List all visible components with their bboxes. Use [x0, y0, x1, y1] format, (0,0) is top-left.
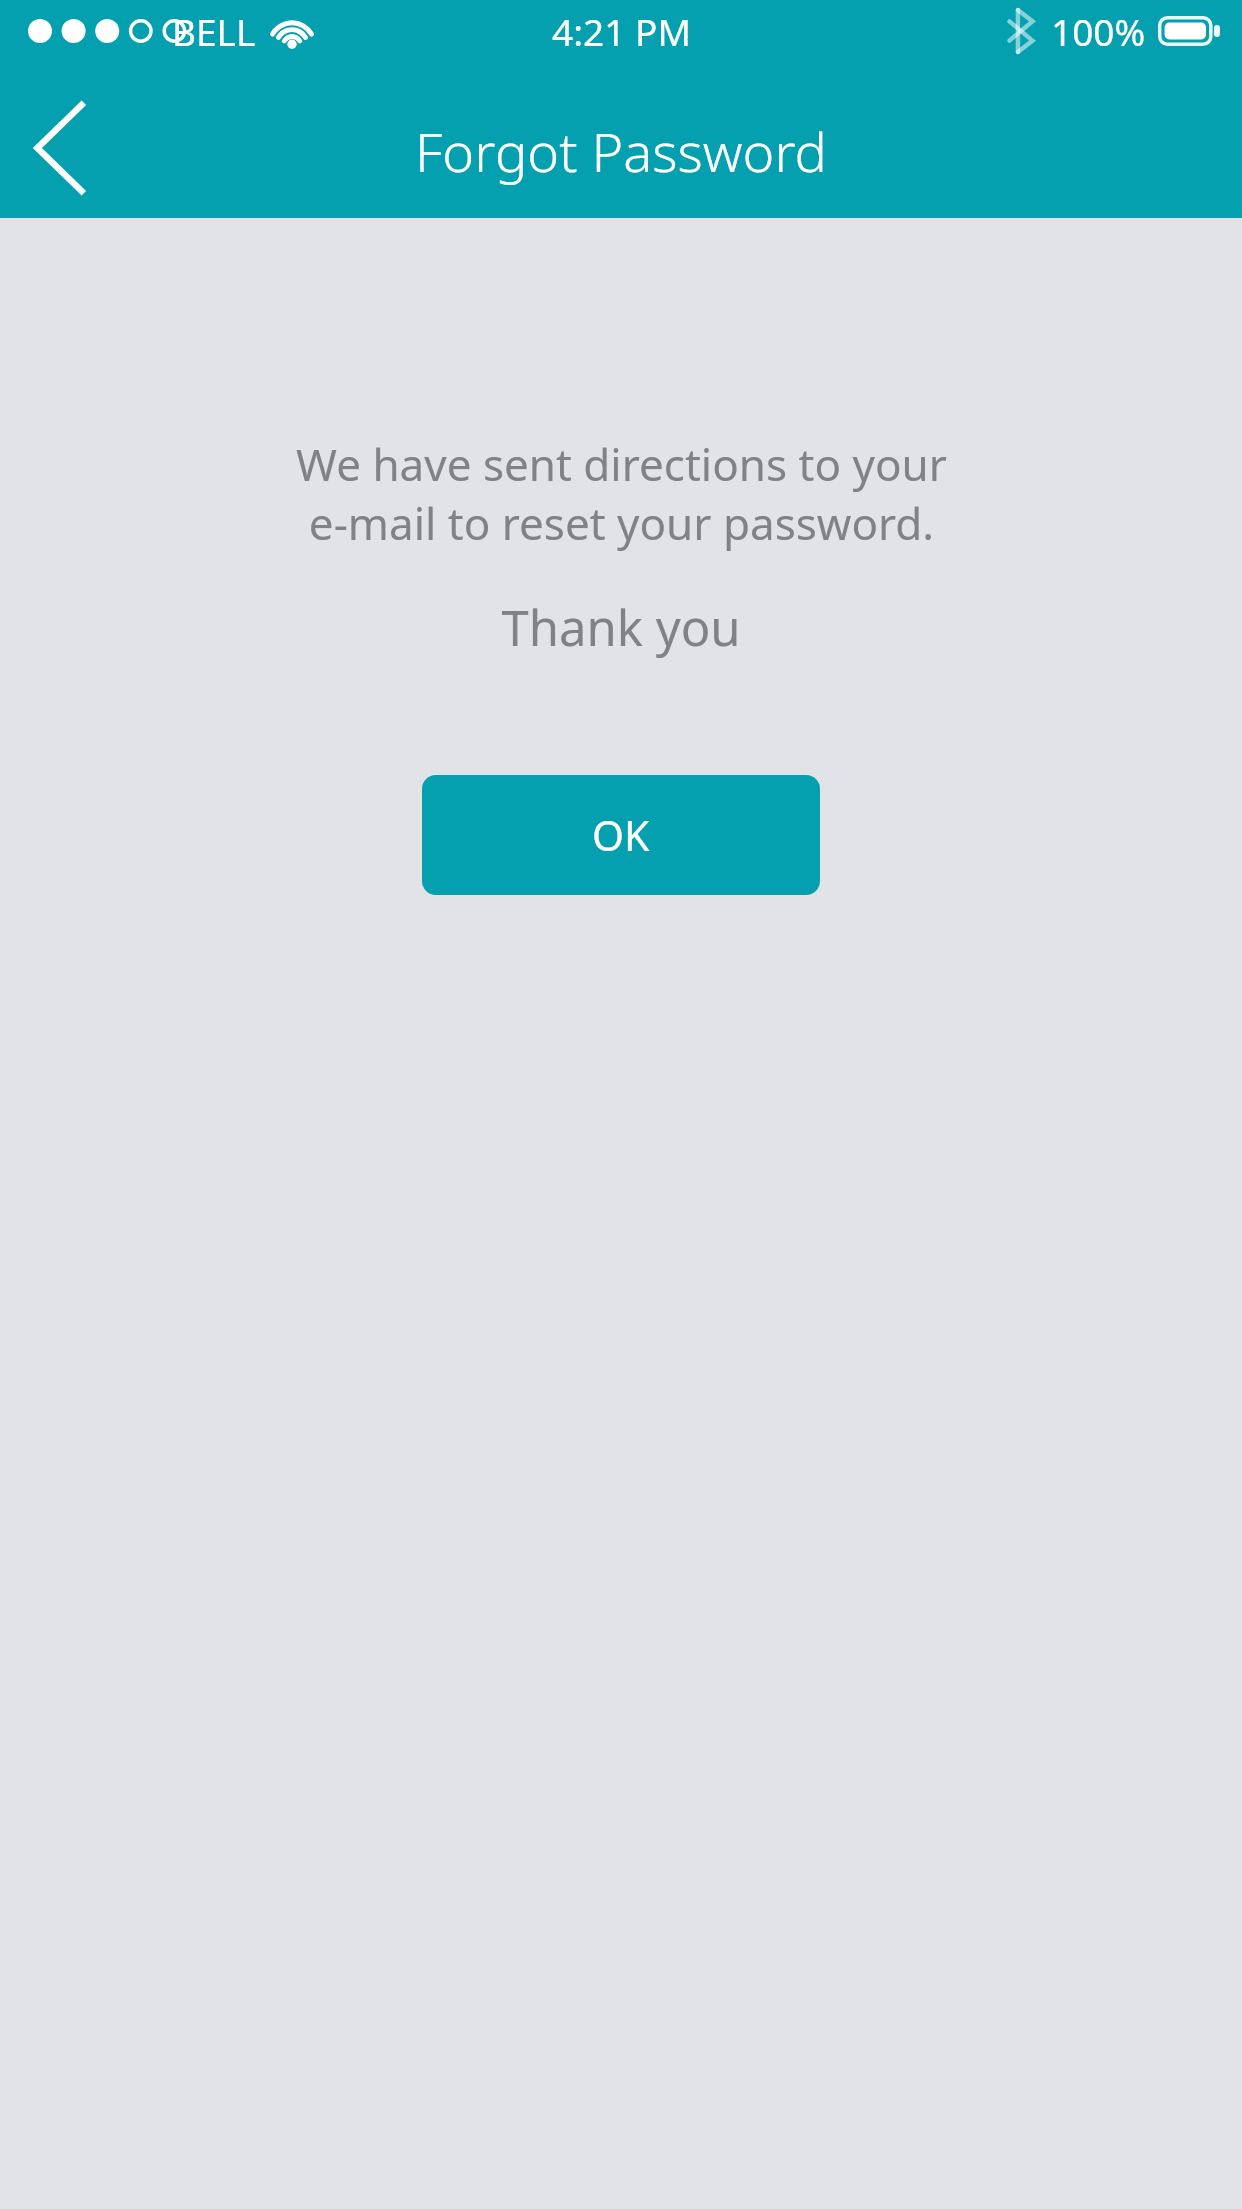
staticText: Thank you — [501, 594, 741, 661]
staticText: 4:21 PM — [552, 6, 691, 56]
staticText: 100% — [1051, 6, 1146, 56]
staticText: Forgot Password — [415, 114, 827, 188]
button[interactable]: Back — [0, 78, 118, 218]
staticText: We have sent directions to your e-mail t… — [296, 434, 947, 552]
button[interactable]: OK — [422, 775, 820, 895]
staticText: BELL — [172, 6, 256, 56]
staticText: OK — [592, 807, 650, 863]
